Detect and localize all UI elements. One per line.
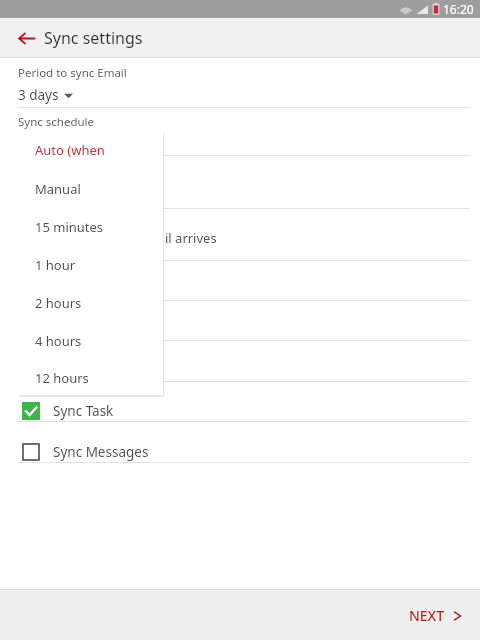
button[interactable]: NEXT xyxy=(402,598,468,633)
staticText: 1 hour xyxy=(35,256,76,274)
button[interactable]: Back xyxy=(10,22,42,54)
button[interactable]: 1 hour xyxy=(18,246,163,284)
button[interactable]: Sync Messages xyxy=(0,432,480,472)
staticText: 3 days xyxy=(18,86,59,104)
staticText: 12 hours xyxy=(35,369,89,387)
button[interactable]: Auto (when received) xyxy=(18,130,163,170)
button[interactable]: 2 hours xyxy=(18,284,163,322)
staticText: Period to sync Email xyxy=(18,65,127,81)
staticText: 2 hours xyxy=(35,294,82,312)
staticText: 16:20 xyxy=(443,1,474,17)
button[interactable]: Sync Task xyxy=(0,391,480,431)
button[interactable]: Manual xyxy=(18,170,163,208)
staticText: 4 hours xyxy=(35,332,82,350)
button[interactable]: 15 minutes xyxy=(18,208,163,246)
button[interactable]: 4 hours xyxy=(18,322,163,360)
staticText: Sync settings xyxy=(44,27,143,49)
staticText: NEXT xyxy=(408,606,444,625)
staticText: 15 minutes xyxy=(35,218,104,236)
staticText: Sync Messages xyxy=(53,443,149,461)
staticText: il arrives xyxy=(165,229,217,247)
staticText: Sync Task xyxy=(53,402,114,420)
button[interactable]: 3 days xyxy=(18,86,73,104)
staticText: Manual xyxy=(35,180,81,198)
button[interactable]: 12 hours xyxy=(18,360,163,395)
staticText: Sync schedule xyxy=(18,114,95,130)
staticText: Auto (when received) xyxy=(35,141,163,159)
